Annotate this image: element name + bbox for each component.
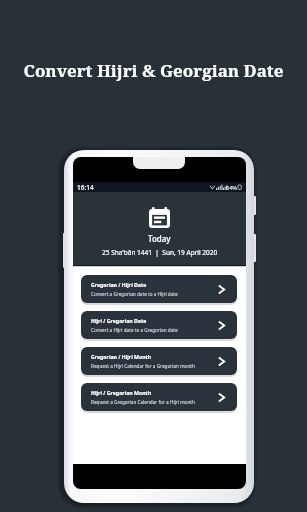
staticText: 25 Sha'bān 1441 | Sun, 19 April 2020 [102,248,218,257]
staticText: Hijri / Gregorian Date [91,317,147,324]
button[interactable]: Gregorian / Hijri Month [81,347,237,375]
staticText: Gregorian / Hijri Date [91,281,147,288]
staticText: 16:14 [77,183,94,192]
staticText: Gregorian / Hijri Month [91,353,152,360]
staticText: 64% [226,184,237,191]
staticText: Request a Gregorian Calendar for a Hijri… [91,399,195,405]
staticText: Today [148,233,171,244]
staticText: Convert a Gregorian date to a Hijri date [91,291,178,297]
button[interactable]: Hijri / Gregorian Month [81,383,237,411]
button[interactable]: Hijri / Gregorian Date [81,311,237,339]
button[interactable]: Gregorian / Hijri Date [81,275,237,303]
staticText: Convert a Hijri date to a Gregorian date [91,327,178,333]
staticText: Convert Hijri & Georgian Date [0,59,307,82]
staticText: Hijri / Gregorian Month [91,389,152,396]
staticText: Request a Hijri Calendar for a Gregorian… [91,363,195,369]
